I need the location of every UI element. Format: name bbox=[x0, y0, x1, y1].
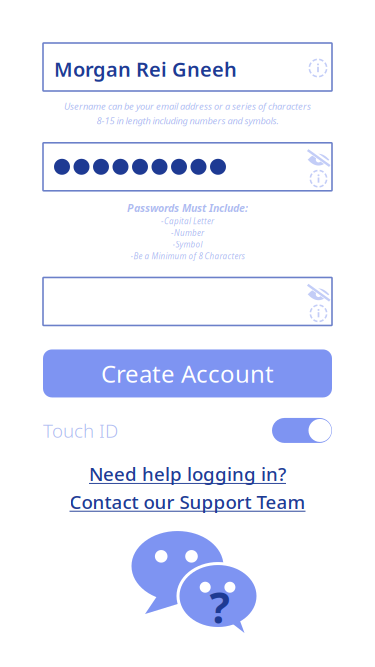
staticText: -Number bbox=[171, 228, 204, 238]
staticText: Morgan Rei Gneeh bbox=[54, 56, 237, 82]
staticText: ? bbox=[209, 579, 229, 635]
staticText: -Capital Letter bbox=[161, 216, 214, 227]
button[interactable]: Touch ID toggle bbox=[272, 418, 332, 443]
button[interactable]: Create Account bbox=[43, 349, 332, 397]
staticText: 8-15 in length including numbers and sym… bbox=[96, 114, 278, 127]
staticText: Create Account bbox=[101, 357, 274, 389]
staticText: Contact our Support Team bbox=[69, 489, 305, 514]
staticText: -Symbol bbox=[172, 239, 202, 250]
staticText: -Be a Minimum of 8 Characters bbox=[130, 251, 244, 261]
staticText: Touch ID bbox=[43, 418, 118, 443]
staticText: Username can be your email address or a … bbox=[64, 100, 311, 112]
button[interactable]: Contact our Support Team bbox=[69, 489, 305, 514]
staticText: Passwords Must Include: bbox=[127, 201, 248, 215]
staticText: Need help logging in? bbox=[89, 461, 286, 486]
button[interactable]: Need help logging in? bbox=[89, 461, 286, 486]
